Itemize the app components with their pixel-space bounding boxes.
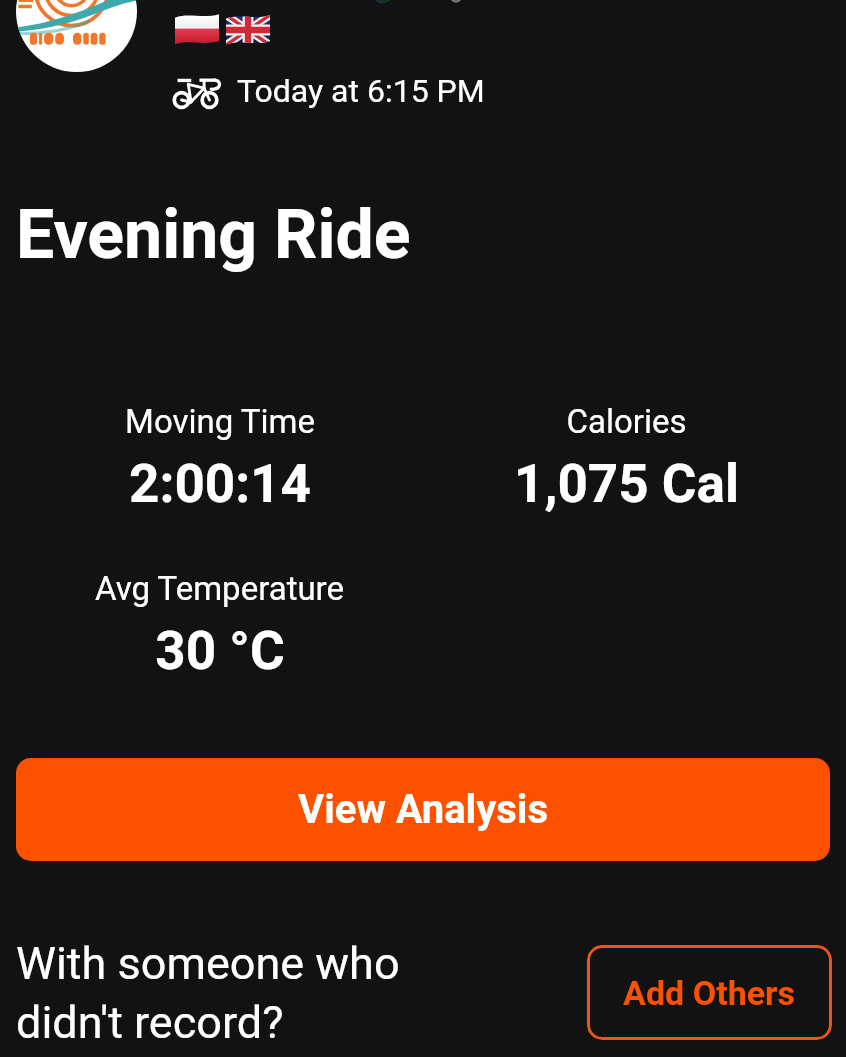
staticText: 2:00:14 [129, 453, 311, 515]
staticText: Evening Ride [16, 195, 411, 275]
button[interactable]: Athlete profile photo [16, 0, 137, 72]
staticText: Today at 6:15 PM [237, 72, 485, 110]
staticText: Avg Temperature [95, 569, 344, 608]
staticText: With someone who didn't record? [16, 937, 456, 1049]
staticText: 30 °C [155, 620, 285, 682]
button[interactable]: View Analysis [16, 758, 830, 861]
button[interactable]: Add Others [587, 945, 832, 1040]
staticText: Calories [566, 402, 687, 441]
staticText: Add Others [623, 973, 796, 1013]
staticText: 1,075 Cal [514, 453, 739, 515]
staticText: View Analysis [298, 786, 549, 833]
staticText: Moving Time [125, 402, 315, 441]
other: Ride activity [172, 78, 221, 112]
